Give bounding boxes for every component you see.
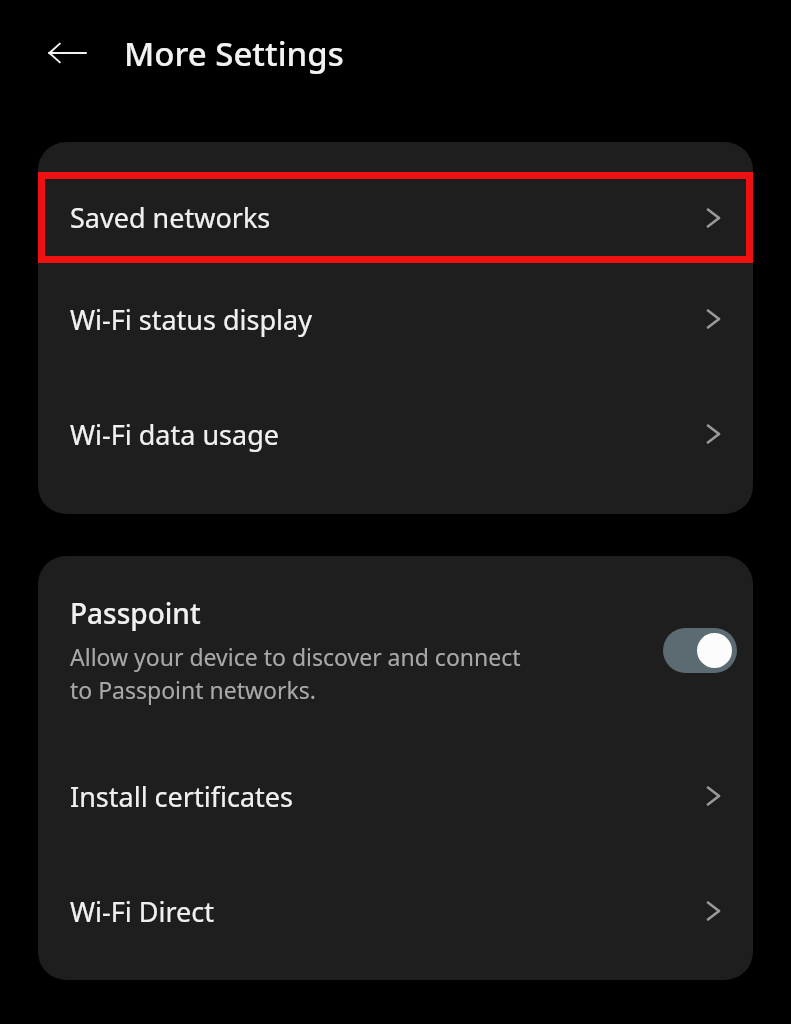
button[interactable]: Back (44, 30, 90, 76)
other: Wi-Fi Direct (698, 896, 728, 926)
other: Wi-Fi data usage (698, 419, 728, 449)
staticText: Saved networks (70, 199, 698, 236)
button[interactable]: Saved networks (38, 172, 753, 263)
staticText: More Settings (124, 31, 344, 76)
staticText: Passpoint (70, 594, 201, 632)
button[interactable]: Passpoint (38, 594, 753, 706)
other: Install certificates (698, 781, 728, 811)
button[interactable]: Passpoint toggle (655, 620, 745, 680)
button[interactable]: Wi-Fi data usage (38, 400, 753, 468)
other: Saved networks (698, 203, 728, 233)
staticText: Wi-Fi data usage (70, 416, 698, 453)
button[interactable]: Wi-Fi Direct (38, 877, 753, 945)
staticText: Wi-Fi status display (70, 301, 698, 338)
staticText: Allow your device to discover and connec… (70, 641, 525, 706)
button[interactable]: Install certificates (38, 762, 753, 830)
staticText: Wi-Fi Direct (70, 893, 698, 930)
other: Wi-Fi status display (698, 304, 728, 334)
button[interactable]: Wi-Fi status display (38, 285, 753, 353)
staticText: Install certificates (70, 778, 698, 815)
